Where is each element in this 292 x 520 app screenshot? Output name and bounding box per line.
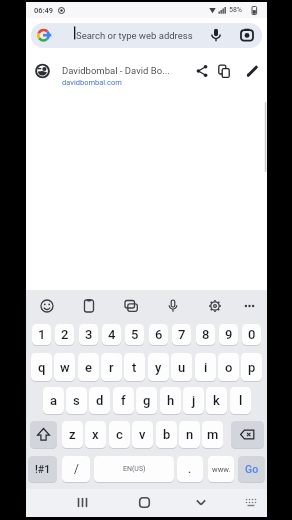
staticText: 1 <box>38 327 46 342</box>
button[interactable]: k <box>206 387 227 414</box>
button[interactable]: www. <box>208 456 234 482</box>
button[interactable]: 0 <box>242 324 261 345</box>
button[interactable] <box>192 60 212 80</box>
staticText: Go <box>245 463 259 475</box>
staticText: j <box>192 393 196 408</box>
staticText: c <box>116 427 123 442</box>
button[interactable] <box>231 421 264 448</box>
staticText: e <box>85 360 92 375</box>
button[interactable]: e <box>78 353 99 381</box>
staticText: u <box>178 360 186 375</box>
button[interactable] <box>204 295 226 317</box>
staticText: 8 <box>202 327 210 342</box>
staticText: w <box>60 360 70 375</box>
staticText: z <box>69 427 76 442</box>
button[interactable]: o <box>218 353 239 381</box>
staticText: t <box>132 360 137 375</box>
staticText: 2 <box>61 327 69 342</box>
button[interactable]: j <box>183 387 204 414</box>
button[interactable]: 1 <box>32 324 51 345</box>
button[interactable]: . <box>177 456 203 482</box>
button[interactable]: g <box>136 387 157 414</box>
staticText: www. <box>212 465 231 474</box>
button[interactable]: p <box>241 353 262 381</box>
staticText: s <box>73 393 80 408</box>
staticText: a <box>50 393 58 408</box>
staticText: 5 <box>131 327 139 342</box>
button[interactable] <box>120 295 142 317</box>
staticText: 4 <box>108 327 116 342</box>
button[interactable] <box>162 295 184 317</box>
staticText: Davidbombal - David Bo... <box>62 65 170 76</box>
button[interactable]: y <box>148 353 169 381</box>
button[interactable]: 9 <box>219 324 238 345</box>
button[interactable] <box>68 489 97 517</box>
button[interactable]: n <box>179 421 200 448</box>
button[interactable]: a <box>43 387 64 414</box>
button[interactable]: 8 <box>196 324 215 345</box>
button[interactable]: EN(US) <box>94 456 174 482</box>
button[interactable]: l <box>230 387 251 414</box>
staticText: 7 <box>178 327 186 342</box>
button[interactable]: c <box>109 421 130 448</box>
staticText: b <box>163 427 171 442</box>
staticText: k <box>213 393 220 408</box>
staticText: n <box>186 427 194 442</box>
button[interactable] <box>36 295 58 317</box>
staticText: . <box>188 463 192 476</box>
button[interactable]: 4 <box>102 324 121 345</box>
staticText: 3 <box>85 327 93 342</box>
button[interactable]: w <box>54 353 75 381</box>
button[interactable]: t <box>124 353 145 381</box>
staticText: !#1 <box>35 463 51 475</box>
button[interactable] <box>246 295 268 317</box>
staticText: f <box>121 393 126 408</box>
button[interactable]: z <box>62 421 83 448</box>
button[interactable]: / <box>62 456 90 482</box>
button[interactable]: h <box>160 387 181 414</box>
button[interactable]: Search or type web address <box>31 23 262 48</box>
button[interactable] <box>130 489 159 517</box>
button[interactable]: m <box>202 421 223 448</box>
button[interactable]: f <box>113 387 134 414</box>
button[interactable]: Davidbombal - David Bo... <box>26 55 267 95</box>
button[interactable]: Go <box>238 456 265 482</box>
button[interactable] <box>236 489 265 517</box>
staticText: davidbombal.com <box>62 78 122 87</box>
button[interactable] <box>206 25 226 45</box>
button[interactable]: b <box>156 421 177 448</box>
button[interactable]: 5 <box>125 324 144 345</box>
staticText: x <box>92 427 99 442</box>
staticText: h <box>167 393 175 408</box>
staticText: o <box>225 360 233 375</box>
staticText: i <box>204 360 208 375</box>
button[interactable]: 2 <box>55 324 74 345</box>
staticText: / <box>74 462 79 476</box>
button[interactable]: 6 <box>149 324 168 345</box>
button[interactable] <box>237 25 257 45</box>
button[interactable] <box>30 421 57 448</box>
button[interactable]: 7 <box>172 324 191 345</box>
button[interactable] <box>186 489 215 517</box>
staticText: l <box>239 393 243 408</box>
staticText: 6 <box>155 327 163 342</box>
button[interactable]: q <box>31 353 52 381</box>
button[interactable]: u <box>171 353 192 381</box>
button[interactable]: 3 <box>79 324 98 345</box>
staticText: Search or type web address <box>76 30 193 41</box>
button[interactable]: i <box>195 353 216 381</box>
button[interactable]: x <box>85 421 106 448</box>
staticText: m <box>207 427 219 442</box>
button[interactable]: s <box>66 387 87 414</box>
button[interactable]: !#1 <box>28 456 57 482</box>
button[interactable]: d <box>89 387 110 414</box>
staticText: v <box>139 427 146 442</box>
button[interactable] <box>78 295 100 317</box>
button[interactable]: r <box>101 353 122 381</box>
button[interactable] <box>214 60 234 80</box>
staticText: q <box>38 360 46 375</box>
button[interactable]: v <box>132 421 153 448</box>
button[interactable] <box>242 60 262 80</box>
staticText: d <box>96 393 104 408</box>
staticText: 9 <box>225 327 233 342</box>
